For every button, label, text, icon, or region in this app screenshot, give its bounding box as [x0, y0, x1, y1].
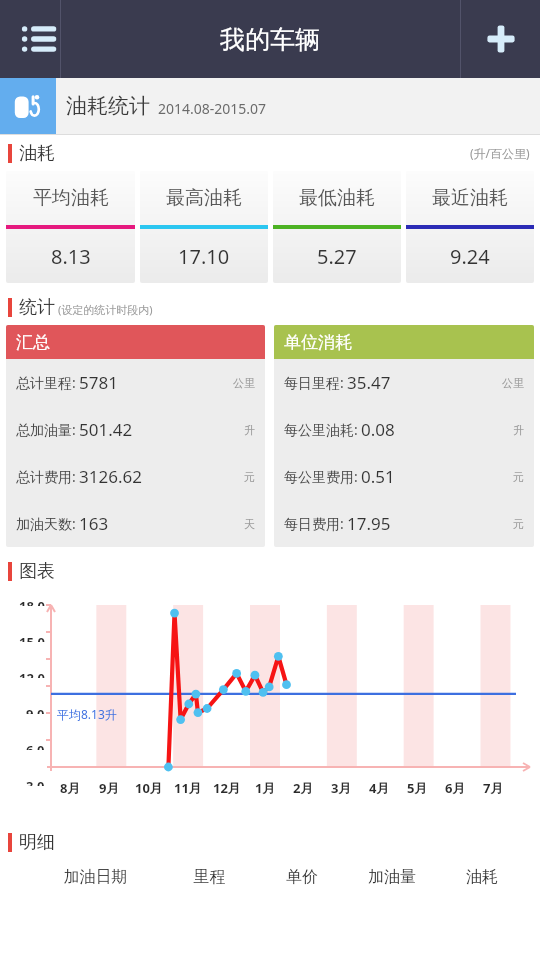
staticText: 9月	[99, 779, 120, 797]
staticText: 9.24	[450, 243, 490, 270]
staticText: 17.95	[347, 512, 391, 535]
staticText: 单位消耗	[284, 332, 352, 353]
staticText: 10月	[135, 779, 163, 797]
staticText: 最低油耗	[299, 186, 375, 210]
button[interactable]: 总计费用:	[6, 453, 265, 500]
staticText: 5781	[79, 371, 118, 394]
staticText: 每公里油耗:	[284, 420, 358, 439]
staticText: 15.0	[19, 633, 45, 642]
staticText: 每日费用:	[284, 514, 344, 533]
staticText: 油耗统计	[66, 93, 150, 119]
staticText: 3.0	[26, 777, 45, 786]
staticText: 元	[244, 470, 255, 484]
button[interactable]: 油耗统计	[0, 78, 540, 134]
button[interactable]: Menu	[0, 0, 78, 78]
staticText: 3月	[331, 779, 352, 797]
staticText: 油耗	[438, 867, 526, 887]
staticText: 单价	[258, 867, 346, 887]
staticText: 35.47	[347, 371, 391, 394]
staticText: 加油天数:	[16, 514, 76, 533]
staticText: 6月	[445, 779, 466, 797]
staticText: 4月	[369, 779, 390, 797]
staticText: 12.0	[19, 669, 45, 678]
staticText: 163	[79, 512, 109, 535]
staticText: 最近油耗	[432, 186, 508, 210]
staticText: 每公里费用:	[284, 467, 358, 486]
staticText: 公里	[233, 376, 255, 390]
staticText: 总计费用:	[16, 467, 76, 486]
staticText: 18.0	[19, 597, 45, 606]
staticText: (设定的统计时段内)	[58, 302, 153, 317]
staticText: 汇总	[16, 332, 50, 353]
staticText: 5月	[407, 779, 428, 797]
staticText: 平均8.13升	[57, 706, 117, 722]
staticText: 8月	[60, 779, 81, 797]
staticText: 明细	[19, 831, 55, 854]
staticText: 11月	[174, 779, 202, 797]
button[interactable]: 加油天数:	[6, 500, 265, 547]
staticText: 图表	[19, 560, 55, 583]
staticText: 升	[513, 423, 524, 437]
staticText: 最高油耗	[166, 186, 242, 210]
staticText: 12月	[213, 779, 241, 797]
staticText: 升	[244, 423, 255, 437]
staticText: 6.0	[26, 741, 45, 750]
staticText: (升/百公里)	[470, 145, 530, 161]
button[interactable]: 每公里费用:	[274, 453, 534, 500]
staticText: 里程	[161, 867, 258, 887]
button[interactable]: 平均油耗	[6, 171, 135, 283]
staticText: 平均油耗	[33, 186, 109, 210]
staticText: 3126.62	[79, 465, 142, 488]
staticText: 0.51	[361, 465, 395, 488]
staticText: 元	[513, 517, 524, 531]
staticText: 501.42	[79, 418, 133, 441]
button[interactable]: 总加油量:	[6, 406, 265, 453]
staticText: 2014.08-2015.07	[158, 99, 267, 118]
button[interactable]: 每日费用:	[274, 500, 534, 547]
staticText: 加油日期	[30, 867, 161, 887]
button[interactable]: 每公里油耗:	[274, 406, 534, 453]
staticText: 元	[513, 470, 524, 484]
staticText: 统计	[19, 296, 55, 319]
staticText: 我的车辆	[220, 24, 320, 55]
staticText: 7月	[483, 779, 504, 797]
staticText: 8.13	[51, 243, 91, 270]
button[interactable]: 总计里程:	[6, 359, 265, 406]
staticText: 1月	[255, 779, 276, 797]
staticText: 总计里程:	[16, 373, 76, 392]
staticText: 油耗	[19, 142, 55, 165]
button[interactable]: 最低油耗	[273, 171, 401, 283]
staticText: 每日里程:	[284, 373, 344, 392]
button[interactable]: Add	[461, 0, 540, 78]
staticText: 9.0	[26, 705, 45, 714]
staticText: 5.27	[317, 243, 357, 270]
staticText: 加油量	[346, 867, 438, 887]
staticText: 天	[244, 517, 255, 531]
button[interactable]: 每日里程:	[274, 359, 534, 406]
staticText: 总加油量:	[16, 420, 76, 439]
staticText: 17.10	[178, 243, 230, 270]
staticText: 2月	[293, 779, 314, 797]
button[interactable]: 最近油耗	[406, 171, 534, 283]
staticText: 公里	[502, 376, 524, 390]
staticText: 0.08	[361, 418, 395, 441]
button[interactable]: 最高油耗	[140, 171, 268, 283]
